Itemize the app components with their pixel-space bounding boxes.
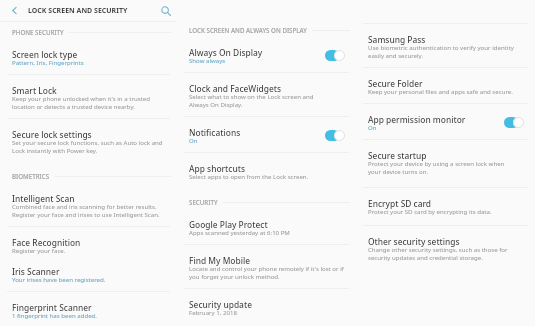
button[interactable]: Fingerprint Scanner (0, 295, 177, 324)
staticText: Apps scanned yesterday at 6:10 PM (189, 228, 290, 236)
button[interactable]: Secure lock settings (0, 122, 177, 159)
staticText: Keep your personal files and apps safe a… (368, 87, 513, 95)
button[interactable]: Intelligent Scan (0, 186, 177, 223)
button[interactable]: App permission monitor (356, 107, 535, 136)
staticText: On (368, 123, 377, 131)
staticText: Smart Lock (12, 85, 57, 96)
button[interactable]: Encrypt SD card (356, 191, 535, 220)
staticText: Select apps to open from the Lock screen… (189, 172, 309, 180)
staticText: Security update (189, 299, 252, 310)
staticText: Fingerprint Scanner (12, 302, 92, 313)
staticText: Protect your SD card by encrypting its d… (368, 207, 492, 215)
staticText: Combined face and iris scanning for bett… (12, 202, 157, 210)
staticText: easily and securely. (368, 51, 424, 59)
staticText: Always On Display (189, 47, 263, 58)
staticText: Protect your device by using a screen lo… (368, 159, 505, 167)
staticText: Find My Mobile (189, 255, 251, 266)
staticText: Encrypt SD card (368, 198, 432, 209)
button[interactable]: Secure startup (356, 143, 535, 180)
staticText: Notifications (189, 127, 241, 138)
button[interactable]: Back (7, 3, 22, 18)
staticText: App permission monitor (368, 114, 466, 125)
staticText: Register your face and irises to use Int… (12, 210, 160, 218)
button[interactable]: Smart Lock (0, 78, 177, 115)
staticText: Register your face. (12, 246, 66, 254)
staticText: Lock instantly with Power key. (12, 146, 98, 154)
staticText: February 1, 2018 (189, 308, 237, 316)
button[interactable]: Samsung Pass (356, 27, 535, 64)
staticText: SECURITY (189, 198, 218, 206)
staticText: security updates and credential storage. (368, 253, 483, 261)
staticText: BIOMETRICS (12, 172, 50, 180)
button[interactable]: Face Recognition (0, 230, 177, 259)
staticText: App shortcuts (189, 163, 245, 174)
staticText: Select what to show on the Lock screen a… (189, 92, 314, 100)
button[interactable]: Other security settings (356, 229, 535, 266)
staticText: Google Play Protect (189, 219, 268, 230)
button[interactable]: Find My Mobile (177, 248, 356, 285)
button[interactable]: Clock and FaceWidgets (177, 76, 356, 113)
button[interactable]: Google Play Protect (177, 212, 356, 241)
button[interactable]: Security update (177, 292, 356, 321)
staticText: Pattern, Iris, Fingerprints (12, 58, 84, 66)
button[interactable]: Iris Scanner (0, 259, 177, 288)
staticText: Screen lock type (12, 49, 78, 60)
button[interactable]: Always On Display (177, 40, 356, 69)
staticText: Keep your phone unlocked when it's in a … (12, 94, 151, 102)
staticText: Change other security settings, such as … (368, 245, 508, 253)
staticText: Show always (189, 56, 226, 64)
button[interactable]: Notifications (177, 120, 356, 149)
staticText: Your irises have been registered. (12, 275, 106, 283)
staticText: Secure Folder (368, 78, 423, 89)
staticText: you forget your unlock method. (189, 272, 280, 280)
staticText: Locate and control your phone remotely i… (189, 264, 344, 272)
staticText: Iris Scanner (12, 266, 60, 277)
button[interactable]: Screen lock type (0, 42, 177, 71)
staticText: Secure lock settings (12, 129, 92, 140)
button[interactable]: App shortcuts (177, 156, 356, 185)
staticText: Face Recognition (12, 237, 81, 248)
staticText: 1 fingerprint has been added. (12, 311, 97, 319)
staticText: LOCK SCREEN AND SECURITY (28, 6, 128, 16)
staticText: location or detects a trusted device nea… (12, 102, 135, 110)
staticText: PHONE SECURITY (12, 28, 64, 36)
staticText: your device turns on. (368, 167, 429, 175)
button[interactable]: Search (158, 3, 173, 18)
staticText: Secure startup (368, 150, 427, 161)
staticText: Samsung Pass (368, 34, 426, 45)
staticText: LOCK SCREEN AND ALWAYS ON DISPLAY (189, 26, 307, 34)
staticText: Other security settings (368, 236, 460, 247)
staticText: Clock and FaceWidgets (189, 83, 281, 94)
button[interactable]: Secure Folder (356, 71, 535, 100)
staticText: On (189, 136, 198, 144)
staticText: Set your secure lock functions, such as … (12, 138, 163, 146)
staticText: Always On Display. (189, 100, 243, 108)
staticText: Intelligent Scan (12, 193, 75, 204)
staticText: Use biometric authentication to verify y… (368, 43, 514, 51)
